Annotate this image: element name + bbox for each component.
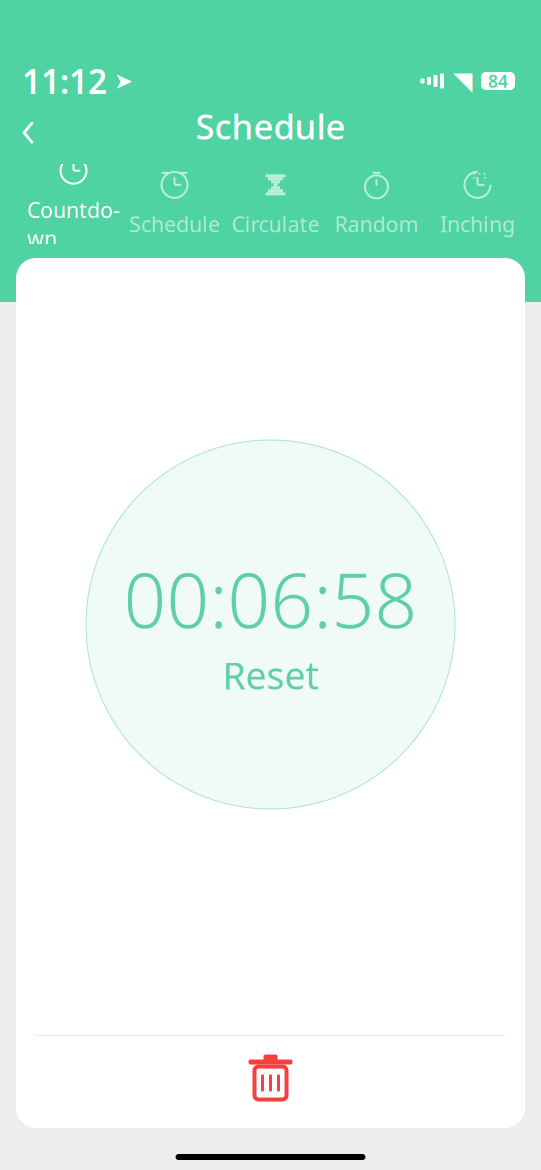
staticText: Schedule — [195, 103, 345, 149]
button[interactable]: Back — [0, 98, 56, 154]
button[interactable]: Circulate — [225, 164, 326, 244]
button[interactable]: Reset countdown timer — [86, 440, 455, 809]
staticText: 84 — [488, 69, 508, 92]
button[interactable]: Inching — [427, 164, 528, 244]
staticText: 11:12 — [22, 59, 107, 103]
button[interactable]: Countdown — [23, 164, 124, 244]
staticText: Circulate — [231, 210, 319, 238]
staticText: Inching — [440, 210, 515, 238]
staticText: Reset — [222, 650, 318, 700]
staticText: Schedule — [129, 210, 220, 238]
staticText: ➤ — [114, 68, 133, 94]
button[interactable]: Random — [326, 164, 427, 244]
staticText: 00:06:58 — [123, 549, 417, 648]
staticText: ◥ — [453, 67, 472, 95]
staticText: Random — [334, 210, 418, 238]
staticText: Countdown — [27, 196, 120, 252]
staticText: ‹ — [20, 89, 35, 163]
button[interactable]: Schedule — [124, 164, 225, 244]
button[interactable]: Delete — [210, 1036, 330, 1116]
